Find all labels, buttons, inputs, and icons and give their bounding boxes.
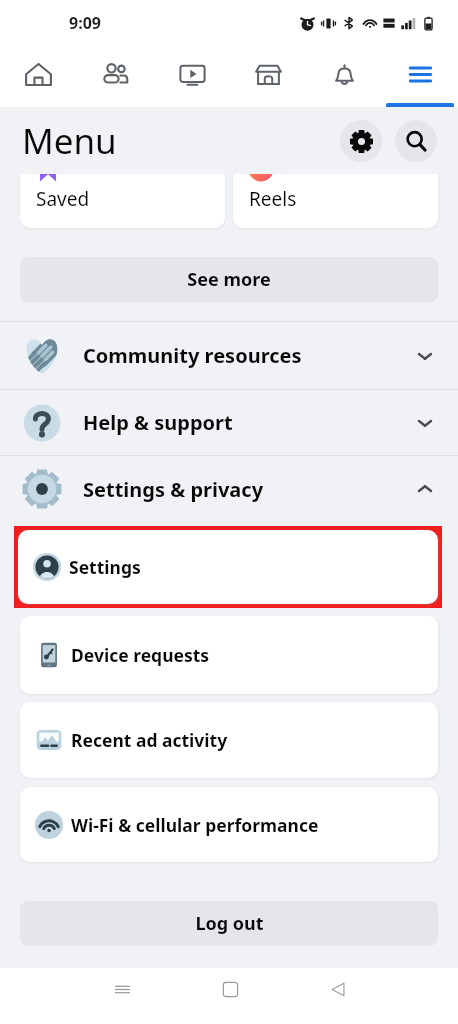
button[interactable]: Video: [154, 45, 230, 107]
button[interactable]: Home: [0, 45, 77, 107]
button[interactable]: Friends: [77, 45, 154, 107]
button[interactable]: Settings & privacy: [0, 456, 458, 522]
button[interactable]: Marketplace: [230, 45, 306, 107]
button[interactable]: Notifications: [306, 45, 382, 107]
staticText: See more: [187, 267, 271, 292]
button[interactable]: Device requests: [20, 616, 438, 694]
button[interactable]: Search: [395, 120, 437, 162]
button[interactable]: Community resources: [0, 322, 458, 389]
staticText: Wi-Fi & cellular performance: [71, 813, 319, 837]
button[interactable]: Reels: [233, 140, 438, 228]
button[interactable]: Settings: [340, 120, 382, 162]
button[interactable]: Recent ad activity: [20, 702, 438, 778]
staticText: Log out: [195, 911, 264, 936]
staticText: Device requests: [71, 643, 210, 667]
button[interactable]: Back: [316, 967, 360, 1011]
button[interactable]: Home: [208, 967, 252, 1011]
button[interactable]: Help & support: [0, 390, 458, 455]
button[interactable]: Menu: [382, 45, 458, 107]
button[interactable]: Log out: [20, 901, 438, 946]
staticText: Saved: [36, 186, 90, 212]
button[interactable]: Wi-Fi & cellular performance: [20, 787, 438, 862]
staticText: 9:09: [69, 12, 101, 34]
staticText: Recent ad activity: [71, 728, 228, 752]
button[interactable]: Settings: [18, 530, 438, 604]
staticText: Reels: [249, 186, 297, 212]
staticText: Settings & privacy: [83, 476, 264, 503]
staticText: Settings: [69, 555, 141, 579]
button[interactable]: Saved: [20, 140, 225, 228]
button[interactable]: Recents: [100, 967, 144, 1011]
staticText: Community resources: [83, 342, 302, 369]
staticText: Help & support: [83, 409, 233, 436]
staticText: Menu: [22, 117, 117, 165]
button[interactable]: See more: [20, 257, 438, 302]
